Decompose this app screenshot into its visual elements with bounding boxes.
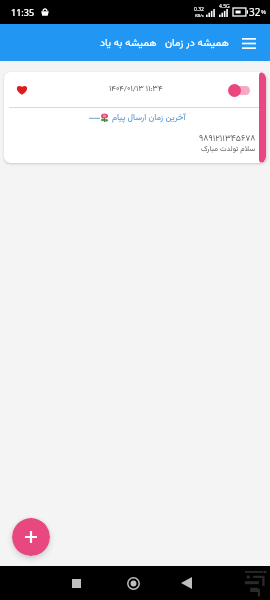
- staticText: همیشه به یاد: [100, 35, 157, 51]
- staticText: 11:35: [11, 6, 35, 18]
- staticText: %: [261, 8, 266, 16]
- button[interactable]: Add: [12, 518, 50, 556]
- staticText: ۹۸۹۱۲۱۱۳۴۵۶۷۸: [199, 132, 256, 146]
- staticText: KB/s: [195, 13, 204, 19]
- staticText: 4.5G: [219, 3, 230, 10]
- button[interactable]: Toggle: [228, 82, 256, 98]
- staticText: همیشه در زمان: [165, 35, 229, 51]
- button[interactable]: Home: [120, 570, 146, 596]
- button[interactable]: Back: [173, 570, 199, 596]
- button[interactable]: Menu: [236, 30, 262, 56]
- staticText: آخرین زمان ارسال پیام: [112, 111, 186, 124]
- staticText: 0.32: [194, 6, 204, 13]
- staticText: 32: [249, 5, 261, 19]
- button[interactable]: ۱۴۰۴/۰۱/۱۳ ۱۱:۳۴: [4, 72, 266, 163]
- staticText: سلام تولدت مبارک: [201, 143, 256, 155]
- staticText: ۱۴۰۴/۰۱/۱۳ ۱۱:۳۴: [109, 83, 163, 96]
- button[interactable]: Recents: [63, 570, 89, 596]
